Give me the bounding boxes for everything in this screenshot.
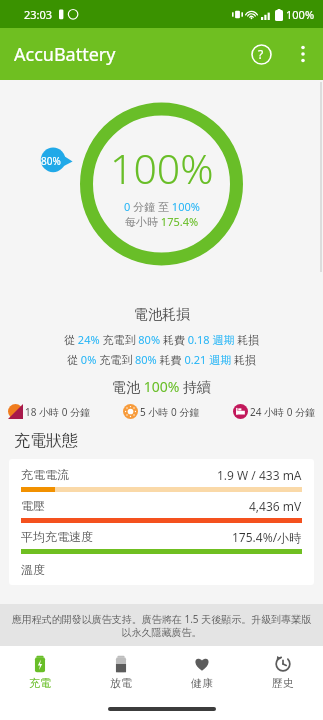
- button[interactable]: 健康: [161, 646, 242, 698]
- button[interactable]: More options: [283, 34, 323, 74]
- button[interactable]: 充電: [0, 646, 80, 698]
- staticText: 從 0% 充電到 80% 耗費 0.21 週期 耗損: [67, 352, 257, 367]
- staticText: 1.9 W / 433 mA: [217, 467, 302, 483]
- staticText: 24 小時 0 分鐘: [250, 405, 315, 419]
- button[interactable]: 歷史: [242, 646, 323, 698]
- staticText: 5 小時 0 分鐘: [140, 405, 200, 419]
- staticText: 100%: [110, 140, 214, 196]
- staticText: 23:03: [24, 7, 53, 22]
- button[interactable]: Help: [239, 32, 283, 76]
- staticText: 應用程式的開發以廣告支持。廣告將在 1.5 天後顯示。升級到專業版以永久隱藏廣告…: [8, 612, 315, 639]
- staticText: 0 分鐘 至 100%: [124, 199, 200, 214]
- staticText: 100%: [286, 7, 315, 22]
- staticText: 電壓: [21, 498, 45, 513]
- staticText: 放電: [110, 676, 132, 690]
- staticText: 從 24% 充電到 80% 耗費 0.18 週期 耗損: [64, 332, 260, 347]
- staticText: 電池 100% 持續: [112, 377, 211, 396]
- button[interactable]: 充電電流: [9, 459, 314, 585]
- staticText: 歷史: [272, 676, 294, 690]
- staticText: 18 小時 0 分鐘: [25, 405, 90, 419]
- staticText: 溫度: [21, 562, 45, 577]
- staticText: 充電: [29, 676, 51, 690]
- button[interactable]: 放電: [80, 646, 161, 698]
- staticText: 4,436 mV: [249, 498, 302, 514]
- staticText: AccuBattery: [14, 42, 116, 67]
- staticText: 80%: [41, 154, 61, 168]
- staticText: 平均充電速度: [21, 529, 93, 544]
- staticText: 電池耗損: [134, 306, 190, 324]
- staticText: 每小時 175.4%: [125, 214, 199, 229]
- staticText: 健康: [191, 676, 213, 690]
- staticText: ?: [258, 46, 264, 62]
- staticText: 充電電流: [21, 467, 69, 482]
- staticText: 充電狀態: [14, 431, 78, 451]
- staticText: 175.4%/小時: [232, 529, 302, 545]
